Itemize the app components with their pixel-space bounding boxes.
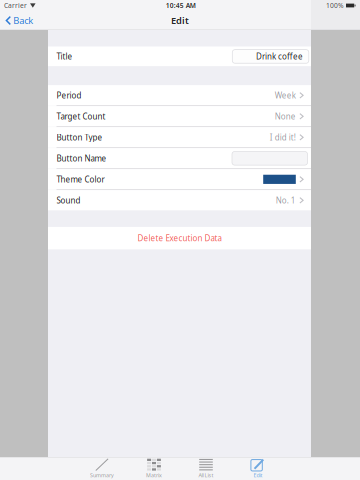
staticText: Week [275, 90, 296, 101]
staticText: Matrix [146, 472, 162, 479]
button[interactable]: Edit [232, 457, 284, 480]
button[interactable]: Title [48, 46, 311, 66]
staticText: Period [56, 90, 81, 101]
staticText: Delete Execution Data [137, 233, 221, 243]
button[interactable]: Back [0, 11, 37, 30]
staticText: 10:45 AM [166, 1, 196, 10]
button[interactable]: Delete Execution Data [48, 227, 311, 249]
button[interactable]: Matrix [128, 457, 180, 480]
staticText: None [275, 111, 296, 122]
staticText: Drink coffee [256, 51, 303, 62]
button[interactable]: Theme Color [48, 169, 311, 189]
staticText: Sound [56, 195, 80, 206]
staticText: I did it! [270, 132, 296, 143]
button[interactable]: Target Count [48, 106, 311, 126]
staticText: Target Count [56, 111, 105, 122]
staticText: No. 1 [276, 195, 296, 206]
staticText: Carrier [4, 1, 27, 10]
button[interactable]: Sound [48, 190, 311, 210]
staticText: Title [56, 51, 72, 62]
button[interactable]: Button Name [48, 148, 311, 168]
staticText: Edit [253, 472, 262, 479]
staticText: Button Type [56, 132, 102, 143]
staticText: 100% [326, 1, 344, 10]
staticText: Button Name [56, 153, 106, 164]
staticText: Theme Color [56, 174, 104, 185]
button[interactable]: Summary [76, 457, 128, 480]
staticText: Summary [90, 472, 114, 479]
button[interactable]: All List [180, 457, 232, 480]
staticText: All List [198, 472, 213, 479]
button[interactable]: Period [48, 85, 311, 105]
staticText: Back [13, 14, 33, 27]
button[interactable]: Button Type [48, 127, 311, 147]
staticText: Edit [171, 14, 189, 27]
